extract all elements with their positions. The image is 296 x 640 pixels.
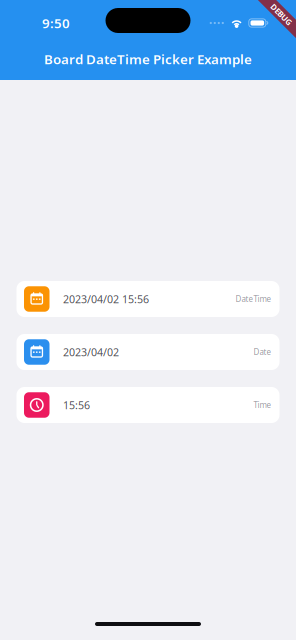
staticText: 9:50 [42,14,70,32]
staticText: 2023/04/02 [63,345,119,359]
staticText: DEBUG [268,9,295,20]
staticText: 15:56 [63,398,90,412]
staticText: Board DateTime Picker Example [44,50,252,68]
button[interactable]: Pick date and time [16,281,279,317]
button[interactable]: Pick date [16,334,279,370]
staticText: Date [253,347,271,357]
staticText: DateTime [235,294,271,304]
staticText: Time [253,400,271,410]
staticText: 2023/04/02 15:56 [63,292,149,306]
button[interactable]: Pick time [16,387,279,423]
